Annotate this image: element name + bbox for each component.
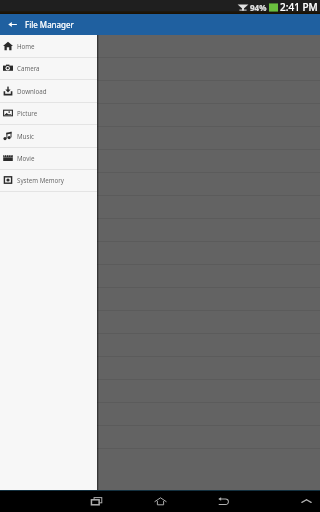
staticText: Movie — [17, 154, 35, 162]
staticText: File Manager — [25, 19, 74, 30]
button[interactable]: Recents — [78, 490, 114, 512]
staticText: Home — [17, 42, 35, 50]
staticText: Picture — [17, 109, 38, 117]
button[interactable]: Download — [0, 80, 97, 102]
button[interactable]: Back — [0, 14, 25, 35]
button[interactable]: Picture — [0, 102, 97, 124]
button[interactable]: Back — [206, 490, 242, 512]
button[interactable]: Home — [142, 490, 178, 512]
staticText: Music — [17, 132, 34, 140]
staticText: 94% — [250, 2, 267, 13]
button[interactable]: Music — [0, 125, 97, 147]
staticText: Download — [17, 87, 47, 95]
button[interactable]: Camera — [0, 57, 97, 79]
staticText: Camera — [17, 64, 40, 72]
staticText: 2:41 PM — [280, 0, 318, 14]
button[interactable]: Expand — [292, 490, 320, 512]
button[interactable]: Movie — [0, 147, 97, 169]
staticText: System Memory — [17, 176, 64, 184]
button[interactable]: Home — [0, 35, 97, 57]
button[interactable]: System Memory — [0, 169, 97, 191]
